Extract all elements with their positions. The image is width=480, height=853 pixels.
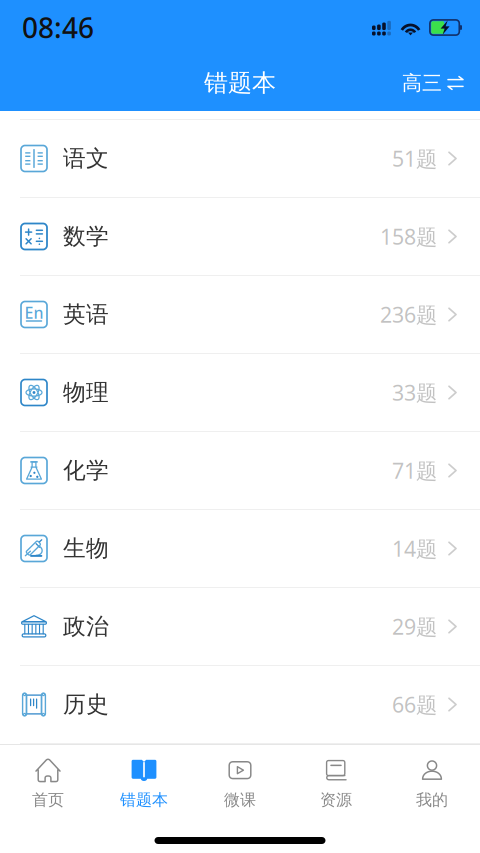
button[interactable]: 数学: [0, 198, 480, 276]
button[interactable]: 错题本: [96, 745, 192, 811]
staticText: 历史: [63, 691, 109, 718]
staticText: 66题: [392, 690, 437, 719]
button[interactable]: 政治: [0, 588, 480, 666]
button[interactable]: En: [0, 276, 480, 354]
button[interactable]: 语文: [0, 120, 480, 198]
staticText: 首页: [32, 790, 64, 810]
staticText: 51题: [392, 144, 437, 173]
staticText: 158题: [380, 222, 437, 251]
staticText: 236题: [380, 300, 437, 329]
staticText: 高三: [402, 71, 442, 95]
button[interactable]: 资源: [288, 745, 384, 811]
staticText: 我的: [416, 790, 448, 810]
staticText: 生物: [63, 535, 109, 562]
staticText: 错题本: [120, 790, 168, 810]
button[interactable]: 物理: [0, 354, 480, 432]
button[interactable]: 我的: [384, 745, 480, 811]
staticText: En: [24, 302, 43, 323]
button[interactable]: 化学: [0, 432, 480, 510]
staticText: 数学: [63, 223, 109, 250]
staticText: 化学: [63, 457, 109, 484]
staticText: 错题本: [204, 68, 276, 98]
staticText: 英语: [63, 301, 109, 328]
staticText: 资源: [320, 790, 352, 810]
staticText: 政治: [63, 613, 109, 640]
button[interactable]: 高三: [402, 71, 464, 95]
staticText: 物理: [63, 379, 109, 406]
staticText: 微课: [224, 790, 256, 810]
staticText: 08:46: [22, 9, 94, 46]
button[interactable]: 历史: [0, 666, 480, 744]
staticText: 33题: [392, 378, 437, 407]
button[interactable]: 微课: [192, 745, 288, 811]
staticText: 71题: [392, 456, 437, 485]
button[interactable]: 首页: [0, 745, 96, 811]
staticText: 14题: [392, 534, 437, 563]
button[interactable]: 生物: [0, 510, 480, 588]
staticText: 语文: [63, 145, 109, 172]
staticText: 29题: [392, 612, 437, 641]
